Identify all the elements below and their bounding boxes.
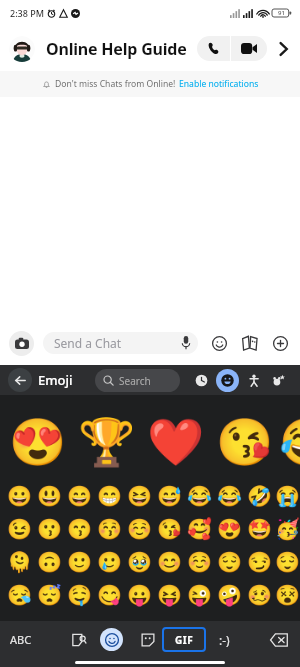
button[interactable]: Video call <box>231 36 267 61</box>
button[interactable]: 🤣 <box>244 479 274 512</box>
button[interactable]: 🤩 <box>244 512 274 545</box>
button[interactable]: 🤤 <box>64 578 94 611</box>
staticText: Don't miss Chats from Online! <box>55 78 176 90</box>
button[interactable]: Voice message <box>174 332 198 354</box>
button[interactable]: 😁 <box>94 479 124 512</box>
button[interactable]: Add <box>268 331 292 355</box>
staticText: 😂 <box>279 415 300 469</box>
staticText: Search <box>119 374 151 388</box>
button[interactable]: 😌 <box>274 545 300 578</box>
button[interactable]: 🤪 <box>214 578 244 611</box>
button[interactable]: Back <box>8 368 32 392</box>
staticText: 🤤 <box>67 583 92 606</box>
button[interactable]: 🥲 <box>94 545 124 578</box>
button[interactable]: 😜 <box>184 578 214 611</box>
button[interactable]: Sticker search <box>62 621 95 658</box>
button[interactable]: 🥰 <box>184 512 214 545</box>
staticText: 🏆 <box>78 415 136 469</box>
button[interactable]: 🫠 <box>4 545 34 578</box>
button[interactable]: 🙃 <box>34 545 64 578</box>
staticText: 🥴 <box>247 583 272 606</box>
staticText: 🥰 <box>187 517 212 540</box>
button[interactable]: ❤️ <box>141 404 210 479</box>
staticText: 🫠 <box>7 550 32 573</box>
staticText: 😝 <box>157 583 182 606</box>
button[interactable]: 😵 <box>274 578 300 611</box>
button[interactable]: ABC <box>2 621 40 658</box>
button[interactable]: 😊 <box>154 545 184 578</box>
button[interactable]: Emoji <box>38 371 73 389</box>
button[interactable]: 😍 <box>3 404 72 479</box>
staticText: 😙 <box>67 517 92 540</box>
button[interactable]: 🙂 <box>64 545 94 578</box>
button[interactable]: 😆 <box>124 479 154 512</box>
button[interactable]: 😴 <box>34 578 64 611</box>
button[interactable]: 😂 <box>184 479 214 512</box>
button[interactable]: More <box>274 40 292 58</box>
button[interactable]: Profile <box>9 36 35 62</box>
button[interactable]: Camera <box>9 331 34 356</box>
button[interactable]: 😭 <box>274 479 300 512</box>
staticText: 🙃 <box>37 550 62 573</box>
button[interactable]: ☺️ <box>124 512 154 545</box>
button[interactable]: Animals <box>267 369 289 391</box>
staticText: 😍 <box>217 517 242 540</box>
button[interactable]: Send a Chat <box>43 332 198 354</box>
button[interactable]: 😘 <box>210 404 279 479</box>
button[interactable]: People <box>243 369 265 391</box>
staticText: 🤪 <box>217 583 242 606</box>
button[interactable]: 😋 <box>94 578 124 611</box>
staticText: 🙂 <box>67 550 92 573</box>
button[interactable]: ☺️ <box>184 545 214 578</box>
button[interactable]: 😏 <box>244 545 274 578</box>
staticText: 2:38 PM <box>10 7 44 19</box>
button[interactable]: 🥳 <box>274 512 300 545</box>
button[interactable]: 😘 <box>154 512 184 545</box>
button[interactable]: Emoji kitchen <box>131 621 164 658</box>
button[interactable]: 🥴 <box>244 578 274 611</box>
button[interactable]: GIF <box>162 627 206 652</box>
button[interactable]: Smileys <box>216 369 239 392</box>
staticText: ❤️ <box>147 415 205 469</box>
button[interactable]: 😙 <box>64 512 94 545</box>
button[interactable]: 😃 <box>34 479 64 512</box>
button[interactable]: Call <box>197 36 230 61</box>
button[interactable]: Don't miss Chats from Online! <box>0 71 300 97</box>
staticText: 😌 <box>217 550 242 573</box>
button[interactable]: 🏆 <box>72 404 141 479</box>
button[interactable]: Cameos <box>238 331 262 355</box>
button[interactable]: 😂 <box>214 479 244 512</box>
button[interactable]: 🥹 <box>124 545 154 578</box>
staticText: 🤣 <box>247 484 272 507</box>
staticText: 🤩 <box>247 517 272 540</box>
button[interactable]: Recent <box>190 369 212 391</box>
button[interactable]: :-) <box>208 621 240 658</box>
button[interactable]: 😀 <box>4 479 34 512</box>
button[interactable]: 😚 <box>94 512 124 545</box>
button[interactable]: Backspace <box>259 621 299 658</box>
button[interactable]: 😉 <box>4 512 34 545</box>
staticText: 😴 <box>37 583 62 606</box>
button[interactable]: Emoji <box>95 621 128 658</box>
button[interactable]: 😍 <box>214 512 244 545</box>
button[interactable]: 😪 <box>4 578 34 611</box>
staticText: 91 <box>278 9 285 17</box>
staticText: ☺️ <box>127 517 152 540</box>
button[interactable]: 😅 <box>154 479 184 512</box>
button[interactable]: 😗 <box>34 512 64 545</box>
staticText: 😜 <box>187 583 212 606</box>
button[interactable]: Online Help Guide <box>46 38 187 60</box>
staticText: 😄 <box>67 484 92 507</box>
button[interactable]: 😌 <box>214 545 244 578</box>
staticText: 🥳 <box>275 517 300 540</box>
staticText: 😘 <box>216 415 274 469</box>
button[interactable]: Search <box>95 369 180 392</box>
staticText: 😭 <box>275 484 300 507</box>
staticText: 😀 <box>7 484 32 507</box>
button[interactable]: 😛 <box>124 578 154 611</box>
button[interactable]: 😝 <box>154 578 184 611</box>
button[interactable]: 😂 <box>279 404 300 479</box>
button[interactable]: 😄 <box>64 479 94 512</box>
button[interactable]: Stickers <box>207 331 231 355</box>
staticText: 😂 <box>217 484 242 507</box>
